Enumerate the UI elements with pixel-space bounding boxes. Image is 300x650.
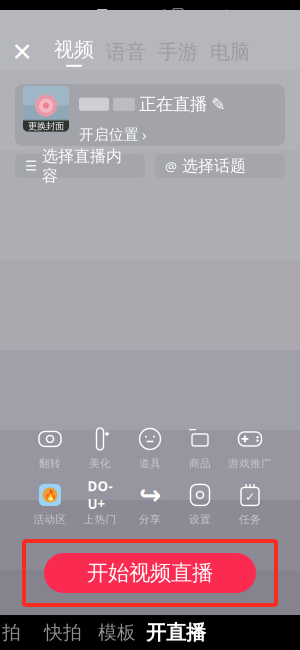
staticText: 商品 xyxy=(189,457,211,470)
staticText: ☰ xyxy=(25,158,37,173)
button[interactable]: 商品 xyxy=(175,427,225,469)
button[interactable]: Close xyxy=(0,30,44,74)
staticText: 活动区 xyxy=(33,513,66,526)
staticText: 美化 xyxy=(89,457,111,470)
staticText: ✓ xyxy=(245,490,255,504)
staticText: DOU+ xyxy=(87,477,112,513)
button[interactable]: 🔥 xyxy=(25,483,75,525)
staticText: 11:26 xyxy=(255,5,291,25)
button[interactable]: 开直播 xyxy=(144,615,208,650)
staticText: 手游 xyxy=(158,40,198,64)
staticText: ▭ xyxy=(208,9,218,21)
button[interactable]: 道具 xyxy=(125,427,175,469)
staticText: 设置 xyxy=(189,513,211,526)
button[interactable]: 开启位置 xyxy=(79,125,147,144)
staticText: 语音 xyxy=(106,40,146,64)
staticText: 开直播 xyxy=(146,620,206,645)
staticText: 正在直播 xyxy=(139,94,207,115)
button[interactable]: 电脑 xyxy=(204,30,256,74)
staticText: › xyxy=(142,125,147,144)
staticText: 道具 xyxy=(139,457,161,470)
button[interactable]: DOU+ xyxy=(75,483,125,525)
staticText: 开始视频直播 xyxy=(87,560,213,586)
staticText: 选择直播内容 xyxy=(42,146,122,186)
button[interactable]: ☰ xyxy=(15,154,145,178)
staticText: 电脑 xyxy=(210,40,250,64)
staticText: 选择话题 xyxy=(182,156,246,176)
button[interactable]: 翻转 xyxy=(25,427,75,469)
button[interactable]: 拍 xyxy=(2,615,36,650)
staticText: 游戏推广 xyxy=(228,457,272,470)
staticText: 分享 xyxy=(139,513,161,526)
staticText: 模板 xyxy=(98,621,136,644)
staticText: 快拍 xyxy=(44,621,82,644)
button[interactable]: ✚ xyxy=(225,427,275,469)
staticText: 拍 xyxy=(2,621,21,644)
button[interactable]: 手游 xyxy=(152,30,204,74)
staticText: 更换封面 xyxy=(28,120,64,132)
button[interactable]: ✦ xyxy=(75,427,125,469)
staticText: 视频 xyxy=(54,37,94,62)
button[interactable]: ↪ xyxy=(125,483,175,525)
staticText: ● xyxy=(135,9,144,21)
button[interactable]: 设置 xyxy=(175,483,225,525)
button[interactable]: 更换封面 xyxy=(23,86,69,132)
staticText: ✚ xyxy=(241,434,249,444)
button[interactable]: 正在直播 xyxy=(79,94,226,115)
button[interactable]: 快拍 xyxy=(36,615,90,650)
staticText: 任务 xyxy=(239,513,261,526)
staticText: N xyxy=(174,9,182,21)
staticText: ↪ xyxy=(139,480,161,510)
button[interactable]: 视频 xyxy=(48,30,100,74)
staticText: 翻转 xyxy=(39,457,61,470)
button[interactable]: 模板 xyxy=(90,615,144,650)
staticText: ✕ xyxy=(11,38,32,66)
staticText: ✎ xyxy=(211,94,226,114)
staticText: 上热门 xyxy=(83,513,116,526)
staticText: 🔥 xyxy=(43,489,56,501)
staticText: @ xyxy=(165,157,177,175)
staticText: ✦ xyxy=(103,429,111,439)
staticText: 开启位置 xyxy=(79,126,139,144)
button[interactable]: @ xyxy=(155,154,285,178)
button[interactable]: ✓ xyxy=(225,483,275,525)
button[interactable]: 语音 xyxy=(100,30,152,74)
button[interactable]: 开始视频直播 xyxy=(44,553,256,593)
staticText: ⓘ xyxy=(159,8,170,21)
staticText: ◑ xyxy=(147,9,156,21)
